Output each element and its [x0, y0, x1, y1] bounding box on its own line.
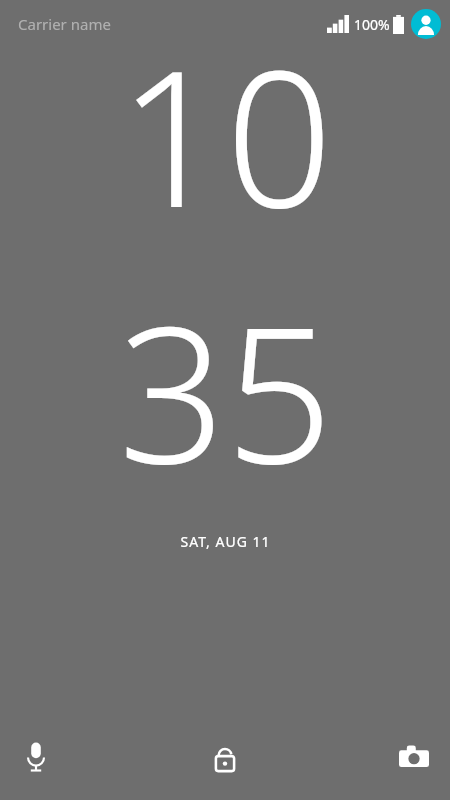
- button[interactable]: Camera: [388, 731, 440, 783]
- button[interactable]: Unlock: [199, 731, 251, 783]
- staticText: 35: [118, 262, 333, 518]
- staticText: 10: [118, 6, 333, 262]
- staticText: SAT, AUG 11: [180, 532, 271, 551]
- staticText: 100%: [354, 15, 390, 34]
- button[interactable]: User profile: [411, 9, 441, 39]
- button[interactable]: Voice assistant: [10, 731, 62, 783]
- staticText: Carrier name: [18, 14, 111, 34]
